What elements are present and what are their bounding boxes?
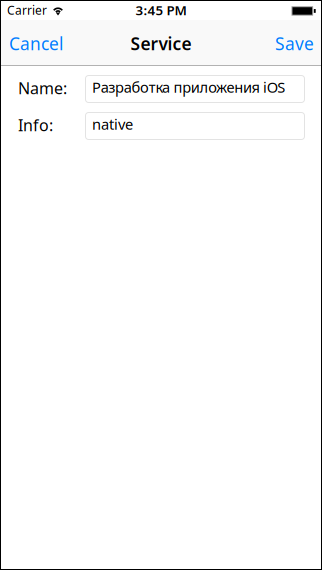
staticText: native [92, 114, 133, 134]
staticText: Carrier [7, 2, 47, 18]
staticText: Save [275, 32, 314, 55]
button[interactable]: Save [267, 20, 322, 65]
staticText: Info: [18, 114, 53, 136]
staticText: Cancel [9, 32, 63, 55]
staticText: 3:45 PM [135, 1, 186, 19]
button[interactable]: Cancel [1, 20, 71, 65]
staticText: Name: [18, 77, 67, 99]
staticText: Service [130, 32, 191, 55]
staticText: Разработка приложения iOS [92, 77, 285, 97]
